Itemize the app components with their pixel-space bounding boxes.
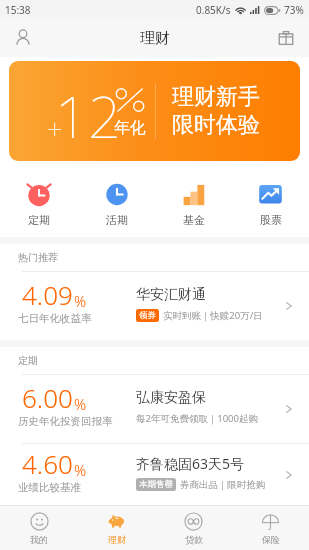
staticText: 定期 <box>28 213 50 227</box>
staticText: 0.85K/s <box>196 3 231 17</box>
staticText: 15:38 <box>5 3 31 17</box>
staticText: 73% <box>284 3 304 17</box>
staticText: 华安汇财通 <box>136 286 206 304</box>
button[interactable]: 股票 <box>232 170 309 237</box>
staticText: 实时到账｜快赎20万/日 <box>163 309 263 322</box>
staticText: 保险 <box>262 534 280 545</box>
staticText: 理财 <box>140 29 170 48</box>
button[interactable]: 贷款 <box>155 507 232 550</box>
button[interactable]: + <box>9 61 300 161</box>
staticText: 热门推荐 <box>18 251 58 264</box>
staticText: 理财新手 <box>172 83 260 111</box>
staticText: 活期 <box>106 213 128 227</box>
staticText: 基金 <box>183 213 205 227</box>
staticText: 业绩比较基准 <box>18 481 81 494</box>
button[interactable]: 4.09 <box>0 271 309 340</box>
staticText: 本期售罄 <box>139 479 173 490</box>
button[interactable]: Gift <box>269 21 303 55</box>
staticText: 领券 <box>139 310 156 321</box>
button[interactable]: 6.00 <box>0 374 309 443</box>
staticText: 定期 <box>18 354 38 367</box>
button[interactable]: 理财 <box>78 507 155 550</box>
button[interactable]: 保险 <box>232 507 309 550</box>
button[interactable]: Account <box>6 21 40 55</box>
staticText: 齐鲁稳固63天5号 <box>136 454 245 473</box>
button[interactable]: 我的 <box>0 507 78 550</box>
staticText: % <box>74 291 87 311</box>
staticText: % <box>74 460 87 480</box>
button[interactable]: 4.60 <box>0 443 309 505</box>
staticText: 股票 <box>260 213 282 227</box>
staticText: 6.00 <box>22 380 73 415</box>
button[interactable]: 定期 <box>0 170 78 237</box>
staticText: 限时体验 <box>172 111 260 139</box>
staticText: 历史年化投资回报率 <box>18 415 113 428</box>
staticText: 年化 <box>114 118 146 138</box>
staticText: % <box>74 394 87 414</box>
staticText: 4.09 <box>22 277 73 312</box>
staticText: 弘康安盈保 <box>136 389 206 407</box>
staticText: + <box>47 110 63 147</box>
staticText: 券商出品｜限时抢购 <box>180 479 266 491</box>
staticText: 每2年可免费领取｜1000起购 <box>136 412 258 425</box>
staticText: 七日年化收益率 <box>18 312 92 325</box>
button[interactable]: 基金 <box>155 170 232 237</box>
staticText: 我的 <box>30 534 48 545</box>
button[interactable]: 活期 <box>78 170 155 237</box>
staticText: 贷款 <box>185 534 203 545</box>
staticText: 4.60 <box>22 446 73 481</box>
staticText: 理财 <box>108 534 126 545</box>
staticText: 12 <box>55 76 122 155</box>
